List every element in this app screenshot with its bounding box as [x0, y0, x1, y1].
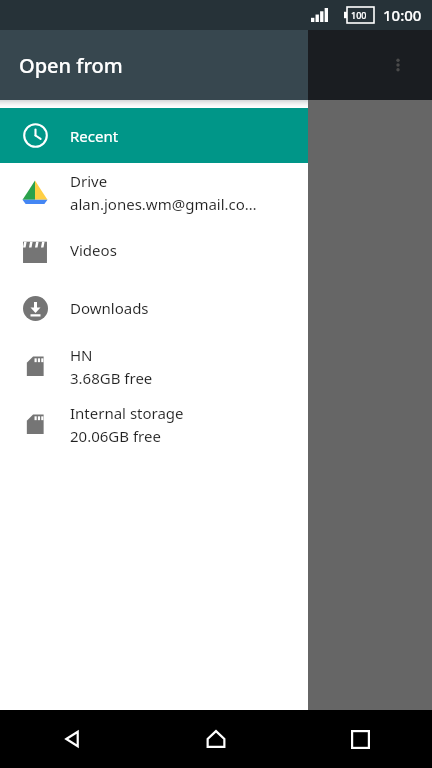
button[interactable]: HN: [0, 337, 308, 395]
staticText: Drive: [70, 171, 108, 191]
button[interactable]: Internal storage: [0, 395, 308, 453]
staticText: Videos: [70, 240, 117, 260]
button[interactable]: Videos: [0, 221, 308, 279]
staticText: HN: [70, 345, 93, 365]
staticText: Downloads: [70, 298, 149, 318]
staticText: 3.68GB free: [70, 368, 153, 388]
button[interactable]: Recent apps: [288, 710, 432, 768]
button[interactable]: Back: [0, 710, 144, 768]
button[interactable]: More options: [378, 45, 418, 85]
staticText: 10:00: [383, 5, 422, 25]
button[interactable]: Drive: [0, 163, 308, 221]
staticText: Open from: [19, 52, 123, 79]
button[interactable]: Home: [144, 710, 288, 768]
button[interactable]: Recent: [0, 108, 308, 163]
staticText: Internal storage: [70, 403, 184, 423]
button[interactable]: Downloads: [0, 279, 308, 337]
staticText: 20.06GB free: [70, 426, 161, 446]
staticText: 100: [351, 9, 367, 21]
staticText: alan.jones.wm@gmail.co…: [70, 194, 257, 214]
staticText: Recent: [70, 126, 119, 146]
